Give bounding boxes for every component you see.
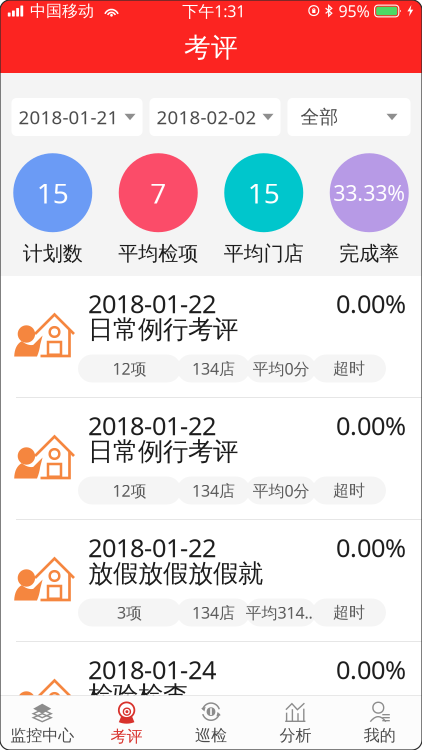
staticText: 我的	[364, 726, 396, 745]
staticText: 平均314...	[245, 602, 316, 623]
staticText: 考评	[184, 31, 238, 64]
staticText: 分析	[279, 726, 311, 745]
staticText: 计划数	[23, 241, 83, 266]
staticText: 5项	[117, 724, 142, 745]
button[interactable]: 监控中心	[0, 695, 84, 750]
staticText: 0.00%	[336, 531, 406, 564]
staticText: 0.00%	[336, 653, 406, 686]
button[interactable]: 2018-01-21	[11, 98, 142, 136]
button[interactable]: 2018-01-22	[0, 520, 422, 641]
staticText: 平均0分	[252, 724, 309, 745]
staticText: 超时	[333, 481, 365, 500]
staticText: 12项	[112, 480, 146, 501]
staticText: 平均门店	[224, 241, 304, 266]
staticText: 2018-01-22	[88, 409, 216, 442]
button[interactable]: 2018-01-22	[0, 276, 422, 397]
button[interactable]: 2018-01-22	[0, 398, 422, 519]
staticText: 0.00%	[336, 409, 406, 442]
staticText: 2018-01-22	[88, 531, 216, 564]
staticText: 12项	[112, 358, 146, 379]
staticText: 全部	[300, 105, 338, 128]
staticText: 监控中心	[10, 726, 74, 745]
staticText: 放假放假放假就	[88, 558, 263, 589]
staticText: 7	[150, 174, 166, 211]
staticText: 134店	[192, 602, 235, 623]
button[interactable]: 考评	[84, 695, 169, 750]
button[interactable]: 巡检	[169, 695, 253, 750]
staticText: 15	[248, 174, 280, 211]
staticText: 完成率	[339, 241, 399, 266]
staticText: 超时	[333, 603, 365, 622]
staticText: 2018-01-24	[88, 653, 216, 686]
staticText: 平均0分	[252, 358, 309, 379]
button[interactable]: 2018-01-24	[0, 642, 422, 750]
button[interactable]: 我的	[338, 695, 422, 750]
staticText: 平均检项	[118, 241, 198, 266]
staticText: 巡检	[195, 726, 227, 745]
staticText: 33.33%	[333, 179, 405, 207]
staticText: 2018-01-22	[88, 287, 216, 320]
staticText: 134店	[192, 724, 235, 745]
staticText: 下午1:31	[182, 0, 245, 22]
button[interactable]: 分析	[253, 695, 338, 750]
staticText: 0.00%	[336, 287, 406, 320]
staticText: 考评	[111, 727, 143, 746]
staticText: 超时	[333, 359, 365, 378]
staticText: 日常例行考评	[88, 314, 238, 345]
staticText: 95%	[339, 0, 370, 22]
staticText: 日常例行考评	[88, 436, 238, 467]
staticText: 134店	[192, 358, 235, 379]
staticText: 134店	[192, 480, 235, 501]
staticText: 15	[37, 174, 69, 211]
staticText: 超时	[333, 725, 365, 744]
button[interactable]: 2018-02-02	[149, 98, 280, 136]
staticText: 中国移动	[30, 1, 94, 21]
staticText: 3项	[117, 602, 142, 623]
button[interactable]: 全部	[287, 98, 410, 136]
staticText: 2018-02-02	[156, 105, 256, 129]
staticText: 检验检查	[88, 680, 188, 711]
staticText: 平均0分	[252, 480, 309, 501]
staticText: 2018-01-21	[18, 105, 118, 129]
